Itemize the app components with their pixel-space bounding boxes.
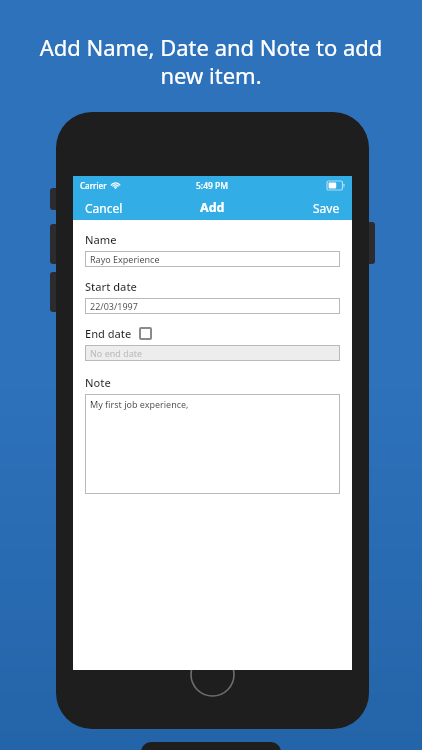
staticText: Add [200,199,225,216]
button[interactable]: Toggle end date [139,327,152,340]
staticText: Start date [85,279,137,294]
staticText: Cancel [85,200,123,216]
staticText: Name [85,232,117,247]
staticText: Add Name, Date and Note to add new item. [20,32,402,90]
staticText: End date [85,326,132,341]
staticText: No end date [90,347,143,359]
button[interactable]: No end date [85,345,340,361]
staticText: Carrier [80,180,107,191]
staticText: Save [313,200,340,216]
button[interactable]: My first job experience, [85,394,340,494]
staticText: My first job experience, [90,398,189,410]
staticText: 5:49 PM [196,180,229,192]
staticText: Note [85,375,111,390]
button[interactable]: Rayo Experience [85,251,340,267]
button[interactable]: Save [301,196,352,220]
staticText: 22/03/1997 [90,300,138,312]
staticText: Rayo Experience [90,253,160,265]
other: Home [190,652,235,697]
button[interactable]: Cancel [73,196,135,220]
button[interactable]: 22/03/1997 [85,298,340,314]
